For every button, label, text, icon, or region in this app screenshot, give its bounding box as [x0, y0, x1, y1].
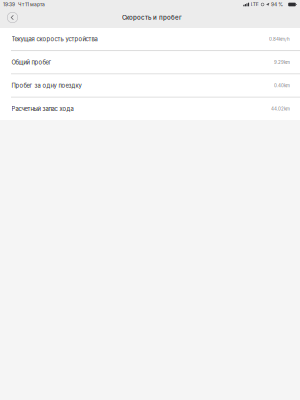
staticText: 9.29km — [274, 60, 290, 65]
staticText: Общий пробег — [11, 59, 51, 66]
staticText: 19:39 Чт 11 марта — [3, 1, 45, 7]
button[interactable]: Текущая скорость устройства — [0, 28, 300, 50]
button[interactable]: Пробег за одну поездку — [0, 74, 300, 97]
button[interactable]: Расчетный запас хода — [0, 98, 300, 120]
staticText: % — [278, 1, 283, 7]
button[interactable]: Общий пробег — [0, 51, 300, 74]
staticText: Расчетный запас хода — [11, 105, 73, 112]
staticText: Текущая скорость устройства — [11, 36, 97, 43]
staticText: 94 — [271, 1, 277, 7]
button[interactable]: Back — [4, 10, 21, 27]
staticText: Пробег за одну поездку — [11, 82, 81, 89]
staticText: 0.84km/h — [269, 36, 290, 42]
staticText: Скорость и пробег — [122, 14, 182, 21]
staticText: LTE — [251, 1, 259, 7]
staticText: 44.02km — [271, 106, 290, 112]
staticText: 0.40km — [274, 83, 290, 88]
